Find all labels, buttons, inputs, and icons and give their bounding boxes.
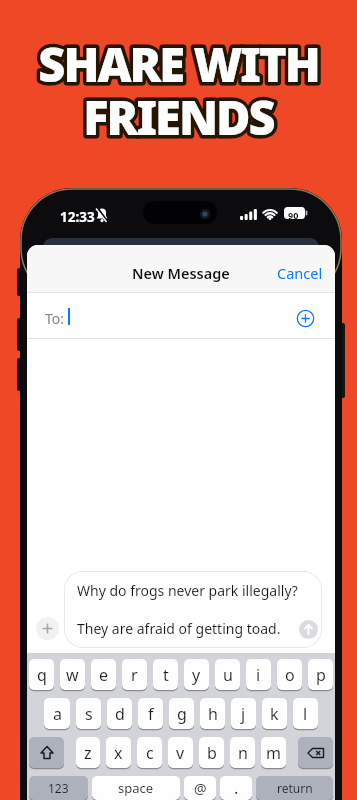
button[interactable]: v [168, 737, 193, 768]
staticText: z [84, 742, 92, 764]
staticText: e [99, 664, 109, 686]
staticText: @ [194, 779, 207, 798]
button[interactable]: z [76, 737, 100, 768]
button[interactable]: l [293, 698, 318, 729]
staticText: u [223, 664, 233, 686]
button[interactable] [298, 737, 333, 768]
button[interactable]: c [137, 737, 162, 768]
button[interactable]: @ [184, 776, 216, 800]
button[interactable]: Cancel [277, 263, 323, 283]
staticText: c [146, 742, 154, 764]
staticText: m [266, 742, 281, 764]
staticText: return [277, 780, 313, 796]
staticText: q [37, 664, 47, 686]
staticText: i [256, 664, 261, 686]
button[interactable]: y [184, 659, 209, 690]
staticText: o [285, 664, 295, 686]
staticText: a [53, 703, 62, 725]
button[interactable]: m [261, 737, 286, 768]
staticText: f [148, 703, 154, 725]
button[interactable]: b [199, 737, 224, 768]
staticText: v [176, 742, 185, 764]
button[interactable]: o [277, 659, 302, 690]
staticText: b [207, 742, 217, 764]
button[interactable]: 123 [29, 776, 88, 800]
button[interactable]: d [107, 698, 132, 729]
staticText: r [131, 664, 138, 686]
button[interactable] [36, 617, 59, 640]
staticText: l [303, 703, 308, 725]
staticText: g [177, 703, 187, 725]
button[interactable]: a [44, 698, 70, 729]
staticText: They are afraid of getting toad. [77, 619, 281, 638]
button[interactable]: g [169, 698, 194, 729]
staticText: h [208, 703, 218, 725]
staticText: s [85, 703, 93, 725]
button[interactable]: h [200, 698, 225, 729]
staticText: 90 [288, 209, 299, 221]
staticText: x [114, 742, 123, 764]
button[interactable] [29, 737, 64, 768]
button[interactable]: q [29, 659, 54, 690]
staticText: New Message [132, 263, 230, 283]
button[interactable]: . [220, 776, 252, 800]
button[interactable]: w [60, 659, 85, 690]
staticText: p [316, 664, 326, 686]
button[interactable]: t [153, 659, 178, 690]
button[interactable]: k [262, 698, 287, 729]
staticText: t [163, 664, 169, 686]
button[interactable]: return [256, 776, 333, 800]
button[interactable]: p [308, 659, 333, 690]
button[interactable]: u [215, 659, 240, 690]
button[interactable]: i [246, 659, 271, 690]
staticText: d [115, 703, 125, 725]
staticText: y [192, 664, 201, 686]
staticText: 12:33 [60, 208, 95, 226]
staticText: SHARE WITH FRIENDS [0, 32, 357, 149]
staticText: space [118, 779, 154, 797]
button[interactable]: n [230, 737, 255, 768]
button[interactable] [299, 620, 318, 639]
staticText: 123 [48, 780, 69, 796]
button[interactable]: x [106, 737, 131, 768]
staticText: j [241, 703, 246, 725]
button[interactable]: f [138, 698, 163, 729]
button[interactable]: space [92, 776, 180, 800]
button[interactable]: j [231, 698, 256, 729]
staticText: . [234, 777, 239, 799]
staticText: Why do frogs never park illegally? [77, 581, 298, 600]
button[interactable]: r [122, 659, 147, 690]
staticText: To: [45, 309, 65, 328]
staticText: w [66, 664, 79, 686]
staticText: Cancel [277, 263, 323, 283]
staticText: n [238, 742, 248, 764]
button[interactable]: To: [27, 293, 335, 338]
staticText: k [270, 703, 279, 725]
button[interactable]: e [91, 659, 116, 690]
button[interactable]: s [76, 698, 101, 729]
staticText: SHARE WITH FRIENDS [0, 32, 357, 149]
